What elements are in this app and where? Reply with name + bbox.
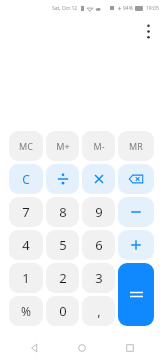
staticText: M+ [56,140,70,152]
button[interactable]: 7 [9,197,43,227]
button[interactable]: 8 [46,197,79,227]
button[interactable]: Plus [118,230,154,260]
button[interactable]: , [82,296,115,326]
button[interactable]: MR [118,131,154,161]
button[interactable]: Backspace [118,164,154,194]
staticText: 6 [95,236,103,254]
button[interactable]: 2 [46,263,79,293]
button[interactable]: Divide [46,164,79,194]
staticText: C [22,171,30,187]
button[interactable]: 4 [9,230,43,260]
button[interactable]: Recent apps [117,335,143,360]
button[interactable]: Back [22,335,48,360]
button[interactable]: 0 [46,296,79,326]
button[interactable]: % [9,296,43,326]
button[interactable]: Equals [118,263,154,326]
button[interactable]: MC [9,131,43,161]
staticText: % [21,303,31,319]
staticText: 94% [123,5,133,12]
staticText: 5 [59,236,67,254]
staticText: 4 [22,236,30,254]
button[interactable]: C [9,164,43,194]
button[interactable]: Minus [118,197,154,227]
button[interactable]: M- [82,131,115,161]
button[interactable]: Home [69,335,95,360]
button[interactable]: M+ [46,131,79,161]
staticText: MR [129,140,143,152]
staticText: Sat, Oct 12 [52,5,78,12]
button[interactable]: 6 [82,230,115,260]
staticText: 9 [95,203,103,221]
staticText: M- [93,140,105,152]
button[interactable]: 5 [46,230,79,260]
staticText: 3 [95,269,103,287]
staticText: 19:05 [146,5,159,12]
staticText: 7 [22,203,30,221]
button[interactable]: More options [136,19,160,43]
button[interactable]: 9 [82,197,115,227]
button[interactable]: 1 [9,263,43,293]
staticText: 0 [59,302,67,320]
staticText: 8 [59,203,67,221]
staticText: MC [19,140,33,152]
staticText: , [97,302,101,320]
staticText: 1 [22,269,30,287]
button[interactable]: Multiply [82,164,115,194]
staticText: 2 [59,269,67,287]
button[interactable]: 3 [82,263,115,293]
